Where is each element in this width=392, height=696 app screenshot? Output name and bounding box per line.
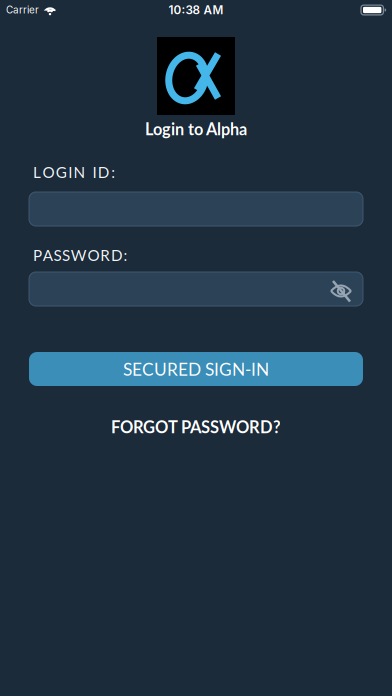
staticText: A (43, 246, 53, 264)
staticText: I (92, 163, 96, 181)
staticText: G (56, 163, 67, 181)
staticText: S (53, 246, 61, 264)
staticText: S (62, 246, 70, 264)
staticText: P (33, 246, 42, 264)
staticText: : (124, 246, 128, 264)
staticText: Carrier (6, 4, 39, 16)
staticText: D (111, 246, 123, 264)
button[interactable]: FORGOT PASSWORD? (111, 417, 281, 437)
staticText: Login to Alpha (145, 119, 247, 139)
button[interactable]: Show password (324, 273, 358, 305)
staticText: R (100, 246, 110, 264)
staticText: L (33, 163, 41, 181)
staticText: W (71, 246, 87, 264)
staticText: D (98, 163, 110, 181)
staticText: O (42, 163, 54, 181)
staticText: : (111, 163, 115, 181)
button[interactable]: SECURED SIGN-IN (29, 352, 363, 386)
staticText: I (68, 163, 72, 181)
staticText: N (74, 163, 86, 181)
staticText: SECURED SIGN-IN (123, 359, 269, 379)
staticText: O (87, 246, 99, 264)
staticText: 10:38 AM (168, 3, 223, 17)
staticText: FORGOT PASSWORD? (111, 417, 281, 437)
